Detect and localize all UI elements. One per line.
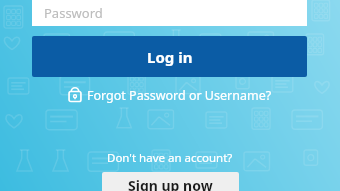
staticText: Password	[44, 4, 103, 22]
staticText: Sign up now	[128, 176, 213, 191]
staticText: Don't have an account?	[107, 150, 233, 166]
button[interactable]: Lock	[64, 85, 276, 105]
staticText: Log in	[147, 47, 193, 67]
other: Lock	[68, 88, 82, 102]
button[interactable]: Log in	[32, 36, 307, 77]
button[interactable]: Password	[32, 0, 307, 26]
staticText: Forgot Password or Username?	[87, 87, 272, 104]
button[interactable]: Sign up now	[102, 172, 239, 191]
